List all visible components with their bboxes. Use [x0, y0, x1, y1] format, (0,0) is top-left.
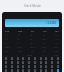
staticText: x⁻¹: [5, 33, 8, 36]
button[interactable]: M+: [31, 49, 35, 52]
button[interactable]: [22, 57, 24, 60]
button[interactable]: [40, 65, 42, 68]
button[interactable]: [17, 57, 19, 60]
button[interactable]: xʸ: [30, 33, 33, 36]
button[interactable]: ): [16, 53, 17, 56]
button[interactable]: √x: [5, 37, 8, 40]
button[interactable]: [5, 61, 7, 64]
staticText: ): [16, 53, 17, 56]
button[interactable]: eˣ: [43, 33, 46, 36]
staticText: Dark Mode: [24, 4, 41, 8]
button[interactable]: sinh: [5, 45, 10, 48]
button[interactable]: tanh: [30, 45, 36, 48]
button[interactable]: [22, 65, 24, 68]
button[interactable]: [22, 69, 24, 72]
button[interactable]: [28, 61, 30, 64]
button[interactable]: [45, 69, 47, 72]
staticText: Ans: [54, 45, 59, 48]
button[interactable]: [34, 61, 36, 64]
staticText: cos: [43, 29, 47, 32]
button[interactable]: [57, 69, 59, 72]
staticText: ±: [42, 53, 44, 56]
button[interactable]: [11, 57, 13, 60]
button[interactable]: [34, 57, 36, 60]
button[interactable]: MR: [18, 49, 22, 52]
button[interactable]: log: [42, 37, 46, 40]
button[interactable]: π: [5, 41, 7, 44]
staticText: |x|: [55, 41, 59, 44]
button[interactable]: [17, 65, 19, 68]
button[interactable]: tan: [55, 29, 59, 32]
button[interactable]: [17, 69, 19, 72]
button[interactable]: [34, 65, 36, 68]
button[interactable]: cosh: [17, 45, 23, 48]
button[interactable]: mod: [27, 53, 33, 56]
button[interactable]: cos: [43, 29, 47, 32]
staticText: mod: [27, 53, 33, 56]
button[interactable]: |x|: [55, 41, 59, 44]
button[interactable]: [34, 69, 36, 72]
button[interactable]: deg: [18, 29, 23, 32]
staticText: 123456: [46, 21, 57, 25]
staticText: xʸ: [30, 33, 33, 36]
button[interactable]: [11, 61, 13, 64]
button[interactable]: [51, 69, 53, 72]
button[interactable]: [11, 69, 13, 72]
button[interactable]: [40, 57, 42, 60]
button[interactable]: [57, 65, 59, 68]
button[interactable]: 10ˣ: [55, 33, 59, 36]
button[interactable]: sin: [31, 29, 35, 32]
button[interactable]: 2nd: [5, 29, 10, 32]
button[interactable]: e: [17, 41, 19, 44]
button[interactable]: [28, 65, 30, 68]
button[interactable]: MC: [5, 49, 9, 52]
button[interactable]: [45, 57, 47, 60]
button[interactable]: [45, 65, 47, 68]
button[interactable]: x⁻¹: [5, 33, 8, 36]
button[interactable]: DEL: [54, 53, 59, 56]
staticText: MC: [5, 49, 9, 52]
button[interactable]: MS: [55, 49, 59, 52]
button[interactable]: n!: [30, 41, 33, 44]
staticText: ln: [30, 37, 33, 40]
button[interactable]: M-: [43, 49, 46, 52]
staticText: log: [42, 37, 46, 40]
button[interactable]: [40, 61, 42, 64]
button[interactable]: %: [43, 41, 45, 44]
staticText: e: [17, 41, 19, 44]
button[interactable]: [28, 69, 30, 72]
button[interactable]: [40, 69, 42, 72]
button[interactable]: [51, 61, 53, 64]
staticText: EXP: [42, 45, 47, 48]
button[interactable]: x²: [18, 33, 21, 36]
button[interactable]: EXP: [42, 45, 47, 48]
button[interactable]: ±: [42, 53, 44, 56]
button[interactable]: [57, 57, 59, 60]
staticText: deg: [18, 29, 23, 32]
staticText: MR: [18, 49, 22, 52]
staticText: DEL: [54, 53, 59, 56]
staticText: sin: [31, 29, 35, 32]
button[interactable]: ln: [30, 37, 33, 40]
staticText: M-: [43, 49, 46, 52]
staticText: (: [5, 53, 6, 56]
button[interactable]: [51, 65, 53, 68]
button[interactable]: [11, 65, 13, 68]
staticText: x²: [18, 33, 21, 36]
button[interactable]: [28, 57, 30, 60]
button[interactable]: 1/x: [55, 37, 59, 40]
button[interactable]: [5, 65, 7, 68]
button[interactable]: ∛x: [17, 37, 20, 40]
button[interactable]: [45, 61, 47, 64]
button[interactable]: [57, 61, 59, 64]
staticText: tanh: [30, 45, 36, 48]
button[interactable]: Ans: [54, 45, 59, 48]
button[interactable]: [51, 57, 53, 60]
button[interactable]: [17, 61, 19, 64]
staticText: 2nd: [5, 29, 10, 32]
button[interactable]: [5, 69, 7, 72]
staticText: eˣ: [43, 33, 46, 36]
button[interactable]: [5, 57, 7, 60]
button[interactable]: (: [5, 53, 6, 56]
button[interactable]: [22, 61, 24, 64]
